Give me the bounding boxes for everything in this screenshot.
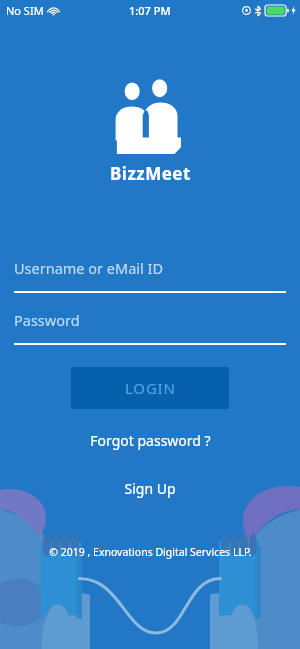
staticText: BizzMeet bbox=[110, 162, 191, 185]
staticText: Username or eMail ID bbox=[14, 258, 164, 278]
staticText: © 2019 , Exnovations Digital Services LL… bbox=[49, 545, 252, 559]
button[interactable]: Forgot password ? bbox=[0, 425, 300, 456]
button[interactable]: LOGIN bbox=[71, 367, 229, 409]
button[interactable]: Username or eMail ID bbox=[0, 258, 300, 293]
staticText: No SIM bbox=[6, 3, 44, 18]
button[interactable]: Sign Up bbox=[0, 473, 300, 504]
staticText: LOGIN bbox=[125, 378, 176, 398]
staticText: Forgot password ? bbox=[90, 431, 211, 450]
staticText: 1:07 PM bbox=[129, 3, 171, 18]
staticText: Password bbox=[14, 310, 80, 330]
button[interactable]: Password bbox=[0, 310, 300, 345]
staticText: Sign Up bbox=[124, 479, 176, 498]
